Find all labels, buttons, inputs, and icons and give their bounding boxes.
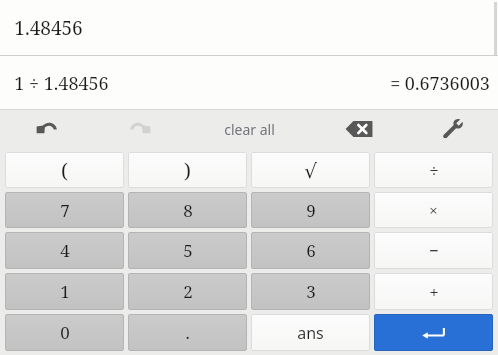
button[interactable]: × bbox=[374, 192, 493, 228]
staticText: 0 bbox=[60, 321, 70, 344]
staticText: clear all bbox=[224, 120, 275, 139]
staticText: 2 bbox=[183, 280, 193, 303]
button[interactable] bbox=[374, 314, 493, 351]
button[interactable]: 9 bbox=[251, 192, 370, 228]
staticText: ans bbox=[297, 322, 324, 344]
staticText: − bbox=[429, 239, 439, 262]
staticText: 8 bbox=[183, 199, 193, 222]
staticText: ) bbox=[184, 157, 191, 184]
button[interactable]: 7 bbox=[5, 192, 124, 228]
button[interactable]: 1 bbox=[5, 273, 124, 310]
button[interactable]: Redo bbox=[93, 110, 186, 148]
button[interactable]: ÷ bbox=[374, 152, 493, 188]
staticText: 3 bbox=[306, 280, 316, 303]
button[interactable]: 2 bbox=[128, 273, 247, 310]
button[interactable]: + bbox=[374, 273, 493, 310]
button[interactable]: 0 bbox=[5, 314, 124, 351]
button[interactable]: 5 bbox=[128, 232, 247, 269]
button[interactable]: ans bbox=[251, 314, 370, 351]
staticText: 4 bbox=[60, 239, 70, 262]
staticText: 1 bbox=[60, 280, 70, 303]
button[interactable]: 1.48456 bbox=[0, 0, 498, 55]
button[interactable]: ( bbox=[5, 152, 124, 188]
staticText: + bbox=[429, 280, 439, 303]
staticText: √ bbox=[304, 159, 317, 182]
staticText: 1 ÷ 1.48456 bbox=[14, 71, 109, 96]
button[interactable]: Settings bbox=[405, 110, 498, 148]
staticText: = 0.6736003 bbox=[390, 71, 490, 96]
staticText: × bbox=[429, 200, 438, 220]
button[interactable]: 3 bbox=[251, 273, 370, 310]
button[interactable]: Undo bbox=[0, 110, 93, 148]
button[interactable]: √ bbox=[251, 152, 370, 188]
staticText: 9 bbox=[306, 199, 316, 222]
button[interactable]: Backspace bbox=[312, 110, 405, 148]
staticText: 5 bbox=[183, 239, 193, 262]
button[interactable]: 8 bbox=[128, 192, 247, 228]
staticText: ÷ bbox=[429, 159, 439, 182]
button[interactable]: − bbox=[374, 232, 493, 269]
staticText: 7 bbox=[60, 199, 70, 222]
button[interactable]: 6 bbox=[251, 232, 370, 269]
button[interactable]: . bbox=[128, 314, 247, 351]
button[interactable]: ) bbox=[128, 152, 247, 188]
button[interactable]: 1 ÷ 1.48456 bbox=[0, 56, 498, 110]
staticText: ( bbox=[61, 157, 68, 184]
staticText: . bbox=[185, 321, 190, 344]
staticText: 1.48456 bbox=[14, 15, 83, 41]
button[interactable]: clear all bbox=[186, 110, 312, 148]
button[interactable]: 4 bbox=[5, 232, 124, 269]
staticText: 6 bbox=[306, 239, 316, 262]
